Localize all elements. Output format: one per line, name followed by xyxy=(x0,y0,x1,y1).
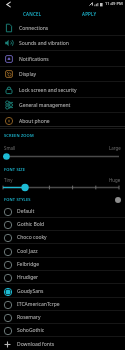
button[interactable]: Display xyxy=(0,66,125,82)
button[interactable]: ITCAmericanTcrpe xyxy=(0,298,125,311)
staticText: Rosemary xyxy=(17,314,41,321)
staticText: Hrudiger xyxy=(17,274,39,281)
staticText: CANCEL xyxy=(23,11,42,17)
button[interactable]: Choco cooky xyxy=(0,231,125,244)
staticText: Display xyxy=(19,71,37,78)
staticText: GoudySans xyxy=(17,288,44,295)
button[interactable]: Notifications xyxy=(0,51,125,67)
staticText: SohoGothic xyxy=(17,327,45,334)
button[interactable]: CANCEL xyxy=(23,11,42,17)
staticText: 11:49 PM xyxy=(105,1,123,7)
staticText: Sounds and vibration xyxy=(19,40,69,47)
button[interactable]: Sounds and vibration xyxy=(0,35,125,51)
button[interactable]: Rosemary xyxy=(0,311,125,324)
staticText: About phone xyxy=(19,118,50,125)
staticText: Tiny xyxy=(4,177,13,183)
button[interactable]: APPLY xyxy=(82,11,97,17)
staticText: Gothic Bold xyxy=(17,221,45,228)
staticText: Lock screen and security xyxy=(19,87,77,94)
button[interactable]: Cool Jazz xyxy=(0,245,125,258)
button[interactable]: Felbridge xyxy=(0,258,125,271)
button[interactable]: Gothic Bold xyxy=(0,218,125,231)
staticText: Large xyxy=(109,145,121,151)
button[interactable]: Back xyxy=(5,1,12,8)
staticText: FONT SIZE xyxy=(4,167,26,172)
other: Scroll handle xyxy=(115,197,121,203)
staticText: Default xyxy=(17,208,35,215)
button[interactable]: Slider xyxy=(0,182,125,193)
staticText: Small xyxy=(4,145,16,151)
button[interactable]: Connections xyxy=(0,20,125,36)
staticText: General management xyxy=(19,102,71,109)
staticText: ITCAmericanTcrpe xyxy=(17,301,60,308)
staticText: Felbridge xyxy=(17,261,40,268)
button[interactable]: General management xyxy=(0,97,125,113)
staticText: Connections xyxy=(19,25,49,32)
button[interactable]: GoudySans xyxy=(0,285,125,298)
staticText: Notifications xyxy=(19,56,49,63)
staticText: Choco cooky xyxy=(17,234,47,241)
staticText: APPLY xyxy=(82,11,97,17)
button[interactable]: SohoGothic xyxy=(0,324,125,337)
staticText: Download fonts xyxy=(17,341,55,348)
button[interactable]: Lock screen and security xyxy=(0,82,125,98)
staticText: Cool Jazz xyxy=(17,248,38,255)
staticText: FONT STYLES xyxy=(4,197,31,202)
button[interactable]: Default xyxy=(0,205,125,218)
button[interactable]: About phone xyxy=(0,113,125,129)
button[interactable]: Download fonts xyxy=(0,338,125,350)
button[interactable]: Hrudiger xyxy=(0,271,125,284)
staticText: SCREEN ZOOM xyxy=(4,133,34,138)
button[interactable]: Slider xyxy=(0,151,125,162)
staticText: Huge xyxy=(109,177,121,183)
